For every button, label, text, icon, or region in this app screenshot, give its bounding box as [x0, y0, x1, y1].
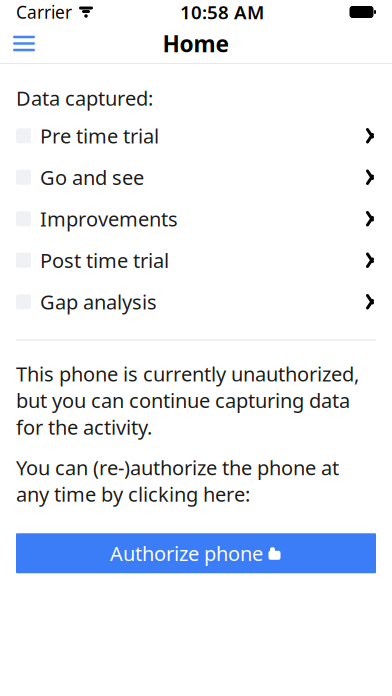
staticText: Pre time trial — [40, 122, 159, 149]
staticText: Data captured: — [16, 85, 153, 111]
staticText: 10:58 AM — [180, 0, 264, 24]
staticText: Carrier — [16, 0, 72, 23]
button[interactable]: Post time trial — [0, 239, 392, 281]
button[interactable]: Menu — [2, 24, 46, 63]
button[interactable]: Gap analysis — [0, 281, 392, 322]
staticText: Go and see — [40, 164, 144, 191]
button[interactable]: Improvements — [0, 198, 392, 239]
staticText: This phone is currently unauthorized, bu… — [16, 360, 359, 440]
staticText: Improvements — [40, 205, 178, 232]
staticText: Gap analysis — [40, 288, 157, 315]
button[interactable]: Go and see — [0, 156, 392, 198]
staticText: Authorize phone — [110, 540, 263, 567]
button[interactable]: Authorize phone — [16, 533, 376, 573]
staticText: Home — [162, 28, 229, 58]
staticText: You can (re-)authorize the phone at any … — [16, 454, 339, 507]
staticText: Post time trial — [40, 247, 169, 274]
button[interactable]: Pre time trial — [0, 115, 392, 156]
